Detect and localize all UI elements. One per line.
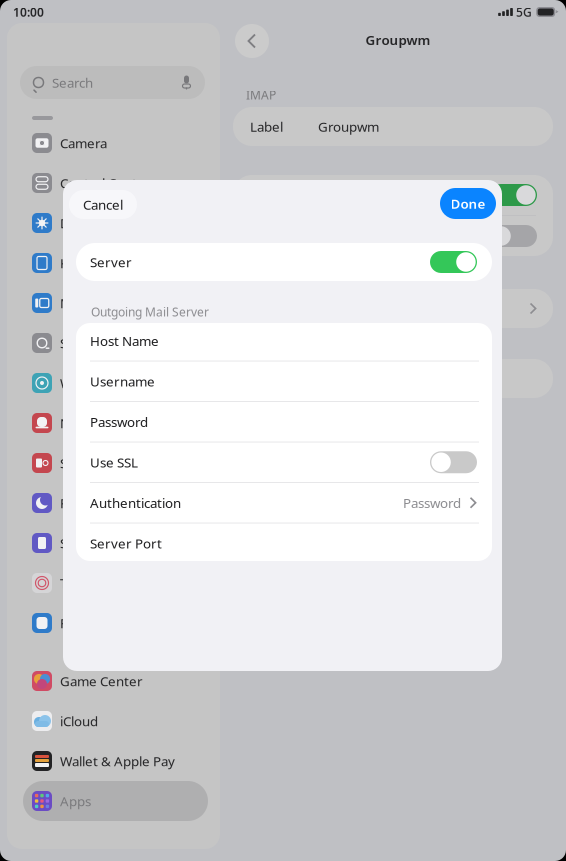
button[interactable]: Display & Brightness (7, 203, 220, 243)
button[interactable]: Search (7, 323, 220, 363)
staticText: 5G (516, 4, 532, 20)
staticText: Cancel (83, 196, 123, 213)
button[interactable]: Multitasking & Gestures (7, 283, 220, 323)
staticText: Search (60, 334, 101, 352)
button[interactable]: Wallpaper (7, 363, 220, 403)
button[interactable]: Done (440, 188, 496, 219)
staticText: Password (403, 494, 461, 512)
button[interactable]: Cancel (69, 190, 137, 219)
staticText: Search (52, 74, 93, 91)
staticText: IMAP (246, 87, 276, 103)
staticText: Home Screen & App Library (60, 254, 191, 272)
staticText: Use SSL (90, 453, 138, 471)
staticText: Server Port (90, 534, 162, 552)
button[interactable]: Sounds & Haptics (7, 443, 220, 483)
button[interactable]: Username (76, 361, 492, 401)
staticText: Groupwm (318, 118, 379, 135)
staticText: Touch ID & Passcode (60, 574, 187, 592)
staticText: Privacy & Security (60, 614, 170, 632)
staticText: Wallpaper (60, 374, 122, 392)
button[interactable]: Back (235, 24, 269, 58)
staticText: Label (250, 118, 283, 135)
button[interactable]: Touch ID & Passcode (7, 563, 220, 603)
staticText: Groupwm (365, 31, 430, 49)
button[interactable]: Game Center (7, 661, 220, 701)
button[interactable]: Use SSL (76, 442, 492, 482)
staticText: Display & Brightness (60, 214, 187, 232)
button[interactable]: Search (20, 66, 205, 99)
button[interactable]: iCloud (7, 701, 220, 741)
staticText: Notifications (60, 414, 137, 432)
staticText: Password (90, 413, 148, 431)
staticText: Done (450, 195, 485, 212)
button[interactable]: Home Screen & App Library (7, 243, 220, 283)
button[interactable]: Authentication (76, 483, 492, 522)
button[interactable]: Camera (7, 123, 220, 163)
button[interactable]: Control Center (7, 163, 220, 203)
button[interactable]: Screen Time (7, 523, 220, 563)
staticText: Screen Time (60, 534, 135, 552)
staticText: Apps (60, 792, 91, 810)
staticText: Camera (60, 134, 107, 152)
staticText: 10:00 (13, 4, 44, 20)
staticText: Multitasking & Gestures (60, 294, 191, 312)
staticText: Control Center (60, 174, 151, 192)
staticText: iCloud (60, 712, 98, 730)
button[interactable]: Host Name (76, 321, 492, 360)
staticText: Wallet & Apple Pay (60, 752, 175, 770)
staticText: Game Center (60, 672, 143, 690)
staticText: Server (90, 253, 132, 271)
button[interactable]: Focus (7, 483, 220, 523)
staticText: Outgoing Mail Server (91, 304, 209, 320)
staticText: Authentication (90, 494, 181, 512)
staticText: Sounds & Haptics (60, 454, 166, 472)
button[interactable]: Server Port (76, 523, 492, 563)
button[interactable]: Password (76, 402, 492, 441)
button[interactable]: Wallet & Apple Pay (7, 741, 220, 781)
staticText: Username (90, 372, 155, 390)
button[interactable]: Apps (7, 781, 220, 821)
staticText: Host Name (90, 332, 159, 350)
button[interactable]: Privacy & Security (7, 603, 220, 643)
button[interactable]: Notifications (7, 403, 220, 443)
staticText: Focus (60, 494, 95, 512)
button[interactable]: Server (76, 243, 492, 281)
